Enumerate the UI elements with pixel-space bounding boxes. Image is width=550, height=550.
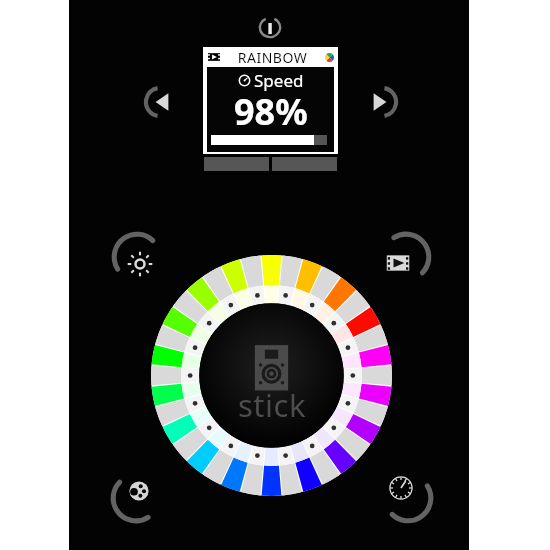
button[interactable]: Speed xyxy=(378,468,438,528)
staticText: 98% xyxy=(234,87,308,136)
button[interactable]: Power xyxy=(255,8,285,38)
button[interactable]: Brightness xyxy=(107,227,167,287)
staticText: stick xyxy=(238,384,306,426)
button[interactable]: Colour wheel xyxy=(151,255,392,496)
button[interactable]: Colours xyxy=(106,468,166,528)
staticText: RAINBOW xyxy=(220,48,325,67)
button[interactable]: Next xyxy=(360,80,404,124)
button[interactable]: Scenes xyxy=(376,227,436,287)
staticText: Speed xyxy=(254,69,304,92)
button[interactable]: Previous xyxy=(138,80,182,124)
